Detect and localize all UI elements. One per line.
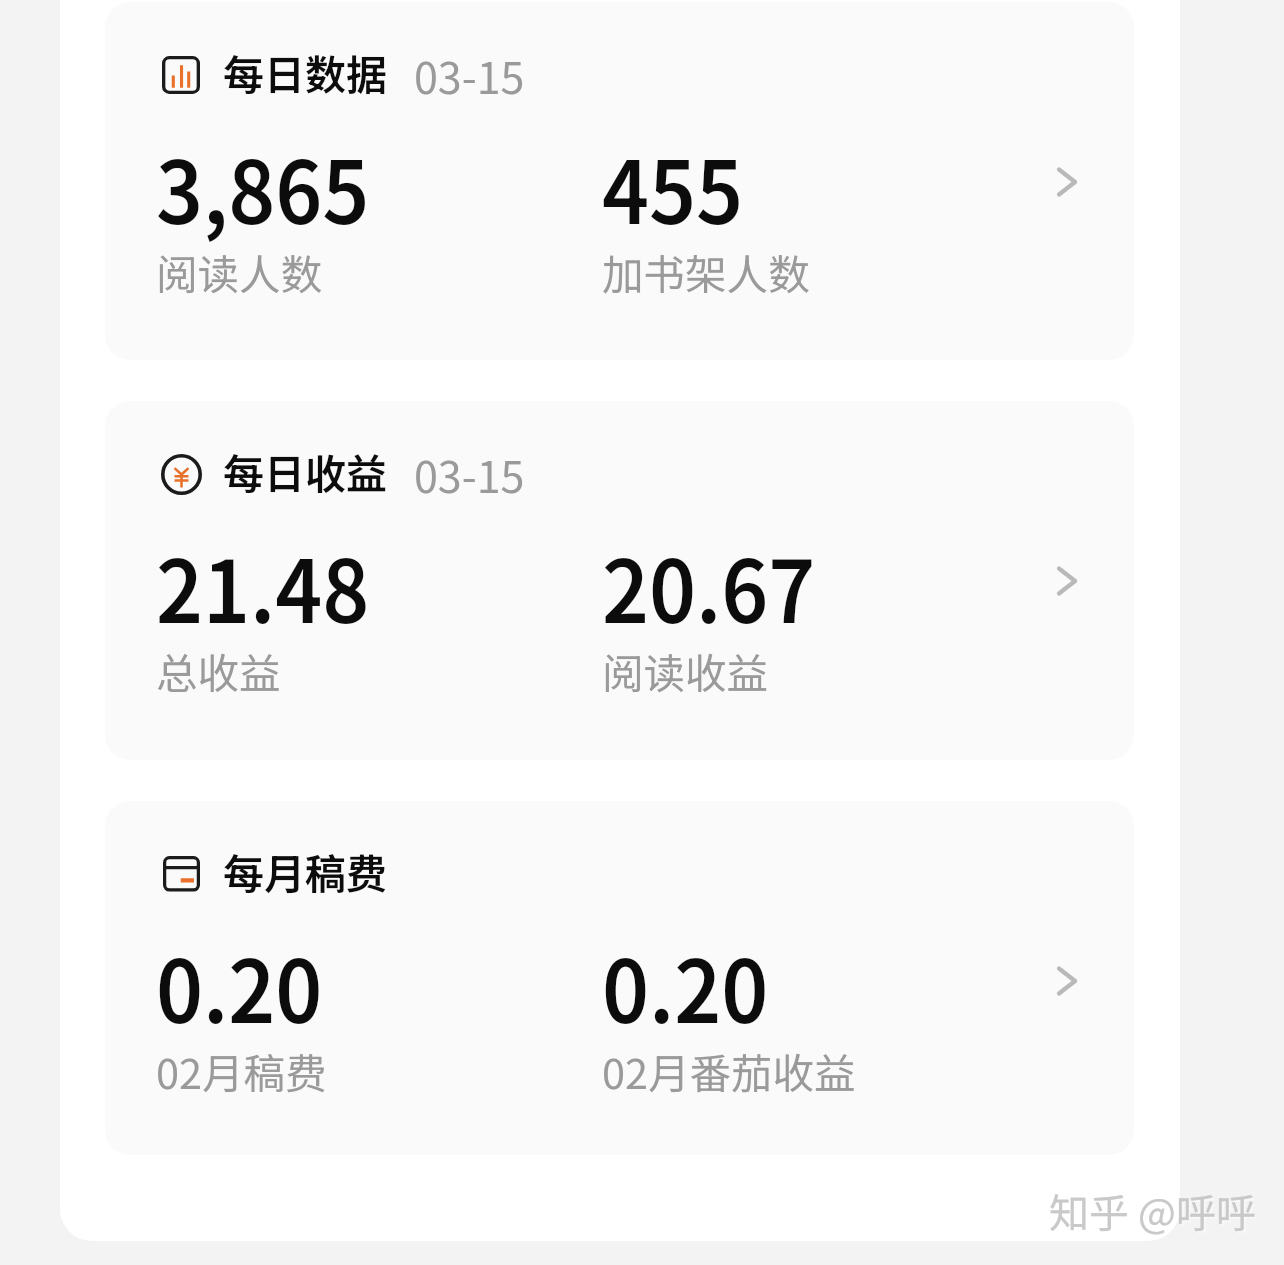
button[interactable]: 每日收益 [105, 401, 1134, 760]
staticText: 每日数据 [223, 42, 387, 101]
staticText: 02月番茄收益 [602, 1041, 856, 1101]
staticText: 02月稿费 [156, 1041, 327, 1101]
staticText: 知乎 @呼呼 [1049, 1182, 1256, 1240]
staticText: 加书架人数 [602, 242, 810, 302]
button[interactable]: 每月稿费 [105, 801, 1134, 1155]
staticText: 455 [602, 124, 743, 249]
staticText: 每月稿费 [223, 841, 387, 900]
staticText: 0.20 [602, 923, 769, 1048]
button[interactable]: 每日数据 [105, 2, 1134, 360]
staticText: 总收益 [156, 641, 281, 701]
button[interactable]: 查看详情 [1045, 959, 1089, 1003]
staticText: 阅读收益 [602, 641, 769, 701]
staticText: 20.67 [602, 523, 816, 648]
staticText: 每日收益 [223, 441, 387, 500]
staticText: 阅读人数 [156, 242, 323, 302]
staticText: 21.48 [156, 523, 370, 648]
button[interactable]: 查看详情 [1045, 160, 1089, 204]
staticText: 03-15 [414, 44, 525, 106]
staticText: 0.20 [156, 923, 323, 1048]
button[interactable]: 查看详情 [1045, 559, 1089, 603]
staticText: 知乎 @呼呼 [1051, 1184, 1258, 1242]
staticText: 3,865 [156, 124, 370, 249]
staticText: 03-15 [414, 443, 525, 505]
